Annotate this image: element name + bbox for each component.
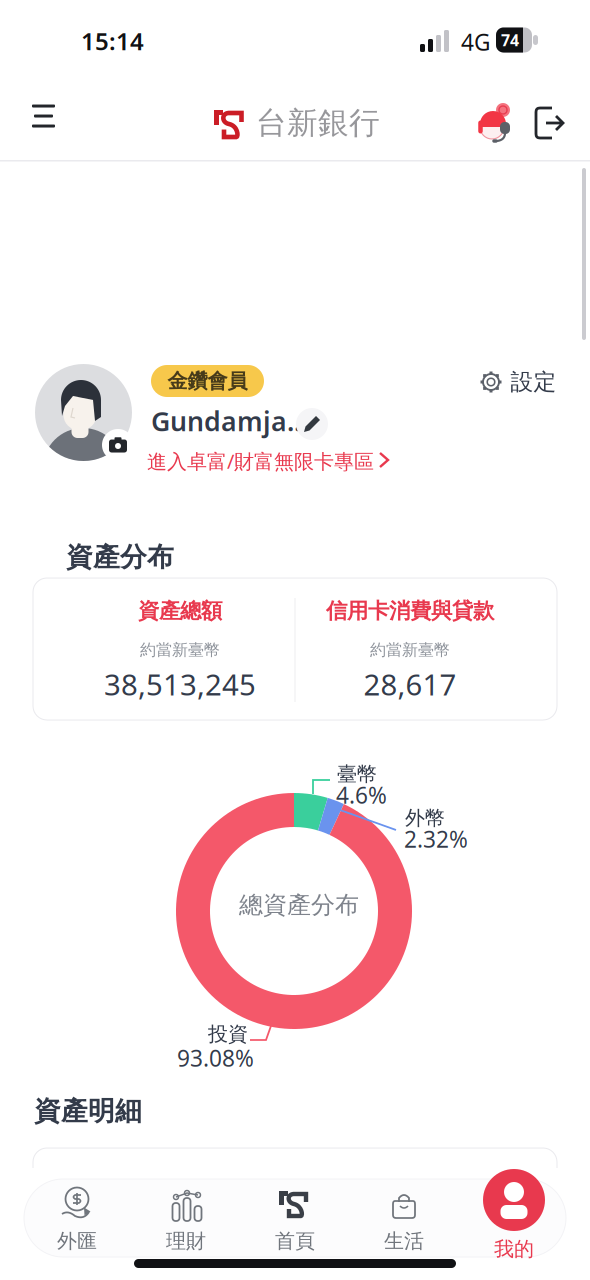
staticText: 金鑽會員 xyxy=(167,369,247,393)
staticText: 28,617 xyxy=(363,664,456,703)
button[interactable]: 金鑽會員 xyxy=(151,365,264,397)
staticText: 資產分布 xyxy=(66,541,174,573)
staticText: 2.32% xyxy=(404,824,468,854)
staticText: 74 xyxy=(501,29,519,51)
button[interactable]: 我的 xyxy=(464,1163,564,1273)
staticText: 總資產分布 xyxy=(239,890,359,920)
button[interactable]: 理財 xyxy=(136,1179,236,1257)
staticText: 約當新臺幣 xyxy=(140,640,220,660)
staticText: 進入卓富/財富無限卡專區 xyxy=(147,448,374,474)
staticText: 投資 xyxy=(208,1022,248,1046)
staticText: 資產明細 xyxy=(34,1095,142,1127)
staticText: 外匯 xyxy=(57,1229,97,1253)
staticText: 設定 xyxy=(510,368,556,396)
staticText: 38,513,245 xyxy=(104,664,256,703)
staticText: 首頁 xyxy=(275,1229,315,1253)
staticText: 理財 xyxy=(166,1229,206,1253)
staticText: 生活 xyxy=(384,1229,424,1253)
staticText: 4G xyxy=(461,27,491,57)
button[interactable]: 生活 xyxy=(354,1179,454,1257)
staticText: 15:14 xyxy=(81,25,144,57)
staticText: 我的 xyxy=(494,1237,534,1261)
staticText: 4.6% xyxy=(336,780,387,810)
staticText: 信用卡消費與貸款 xyxy=(326,598,494,624)
button[interactable]: 設定 xyxy=(484,368,560,396)
staticText: 臺幣 xyxy=(337,762,377,786)
staticText: 台新銀行 xyxy=(256,104,380,142)
staticText: Gundamja... xyxy=(151,403,308,439)
button[interactable]: Menu xyxy=(30,100,58,132)
button[interactable]: Log out xyxy=(529,103,569,143)
button[interactable]: Edit name xyxy=(296,408,328,440)
staticText: 外幣 xyxy=(405,806,445,830)
staticText: 資產總額 xyxy=(138,598,222,624)
button[interactable]: 首頁 xyxy=(245,1179,345,1257)
staticText: 93.08% xyxy=(177,1043,254,1073)
button[interactable]: 外匯 xyxy=(27,1179,127,1257)
staticText: 約當新臺幣 xyxy=(370,640,450,660)
button[interactable]: 進入卓富/財富無限卡專區 xyxy=(147,446,379,476)
button[interactable]: Customer service xyxy=(473,100,517,144)
